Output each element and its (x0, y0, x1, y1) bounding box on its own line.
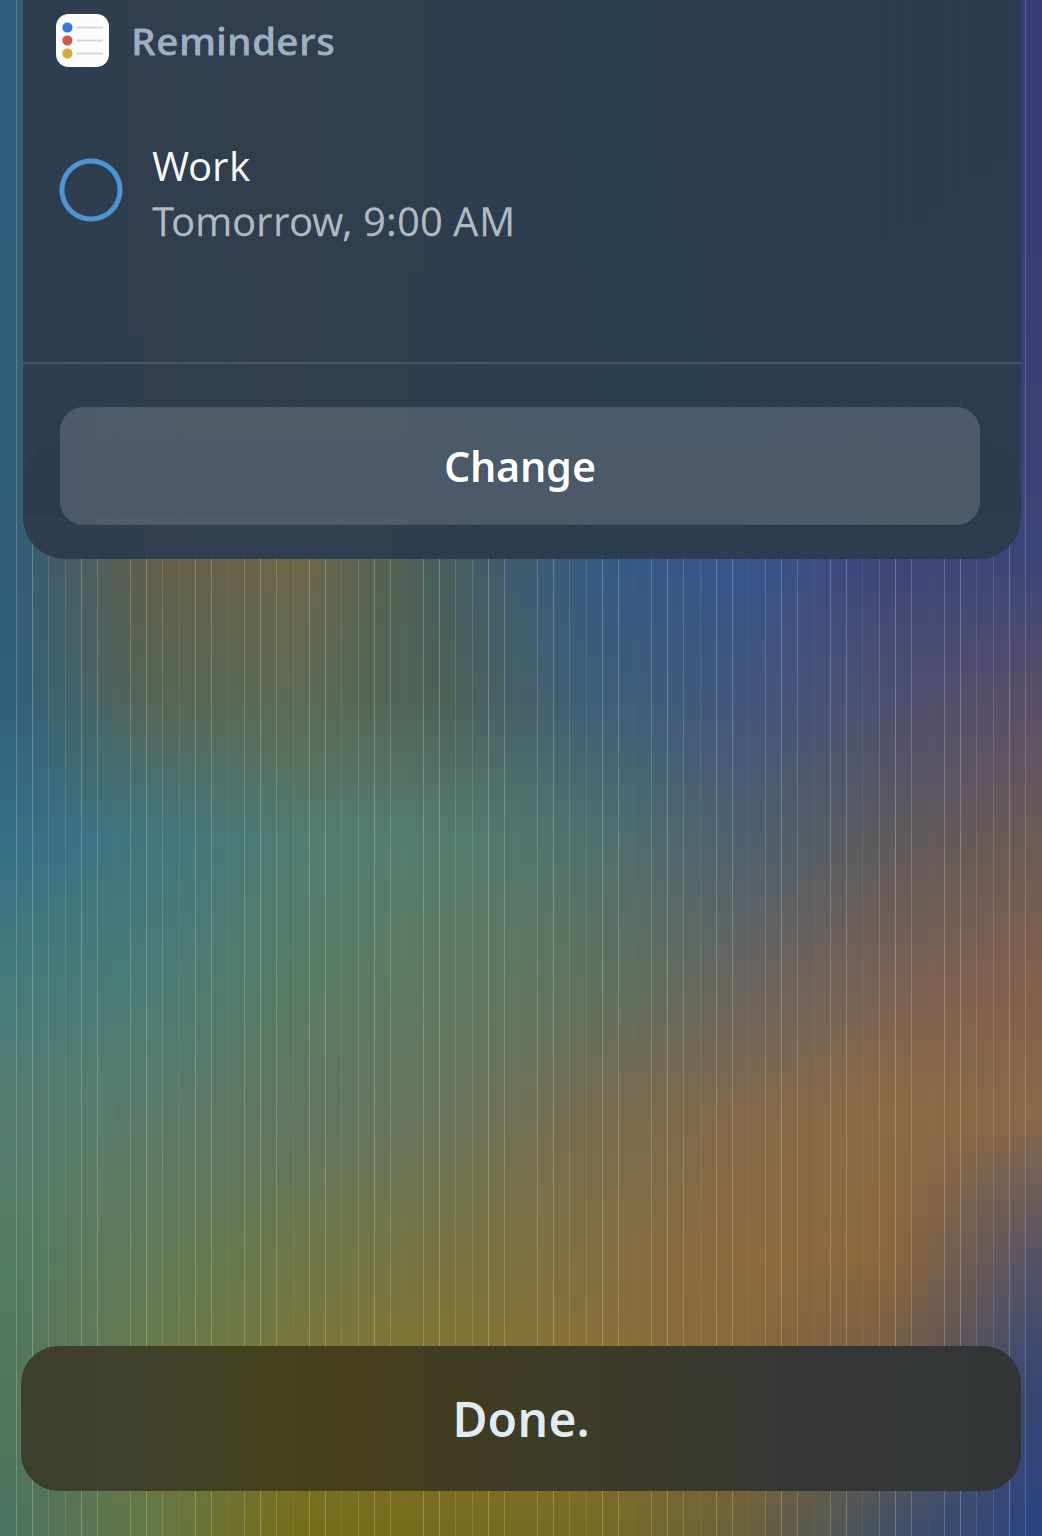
staticText: Reminders (131, 15, 335, 66)
staticText: Done. (452, 1387, 589, 1450)
staticText: Change (444, 439, 596, 493)
staticText: Tomorrow, 9:00 AM (152, 194, 515, 247)
staticText: Work (152, 139, 250, 192)
button[interactable]: Change (60, 407, 980, 525)
button[interactable]: Done. (21, 1346, 1021, 1491)
